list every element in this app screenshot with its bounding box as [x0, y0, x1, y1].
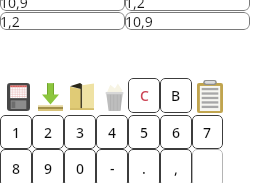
button[interactable]: 0 — [64, 149, 96, 183]
button[interactable]: 2 — [32, 115, 64, 149]
button[interactable]: Open folder — [64, 78, 96, 113]
staticText: C — [140, 86, 149, 105]
staticText: 1,2 — [125, 0, 145, 11]
button[interactable]: Paste — [192, 78, 224, 113]
staticText: 6 — [172, 123, 181, 142]
button[interactable]: 10,9 — [125, 12, 250, 30]
button[interactable]: 7 — [192, 115, 223, 149]
staticText: , — [174, 159, 178, 178]
button[interactable]: 8 — [0, 149, 32, 183]
button[interactable]: C — [128, 78, 160, 113]
button[interactable]: 1 — [0, 115, 32, 149]
button[interactable]: 10,9 — [0, 0, 125, 11]
button[interactable]: 1,2 — [125, 0, 250, 11]
staticText: 8 — [12, 159, 21, 178]
button[interactable]: 5 — [128, 115, 160, 149]
staticText: 7 — [203, 123, 212, 142]
staticText: 4 — [108, 123, 117, 142]
button[interactable]: , — [160, 149, 192, 183]
button[interactable]: 9 — [32, 149, 64, 183]
staticText: 2 — [44, 123, 53, 142]
button[interactable]: Save — [0, 78, 32, 113]
button[interactable]: - — [96, 149, 128, 183]
button[interactable]: . — [128, 149, 160, 183]
staticText: - — [110, 159, 115, 178]
staticText: . — [142, 159, 146, 178]
button[interactable]: Load — [32, 78, 64, 113]
staticText: 1 — [12, 123, 21, 142]
staticText: 10,9 — [0, 0, 28, 11]
button[interactable]: B — [160, 78, 192, 113]
button[interactable]: Delete — [96, 78, 128, 113]
staticText: 9 — [44, 159, 53, 178]
button[interactable] — [192, 149, 223, 183]
staticText: 1,2 — [0, 12, 20, 30]
button[interactable]: 6 — [160, 115, 192, 149]
staticText: 5 — [140, 123, 149, 142]
button[interactable]: 4 — [96, 115, 128, 149]
staticText: 10,9 — [125, 12, 153, 30]
button[interactable]: 3 — [64, 115, 96, 149]
staticText: B — [171, 86, 181, 105]
button[interactable]: 1,2 — [0, 12, 125, 30]
staticText: 3 — [76, 123, 85, 142]
staticText: 0 — [76, 159, 85, 178]
